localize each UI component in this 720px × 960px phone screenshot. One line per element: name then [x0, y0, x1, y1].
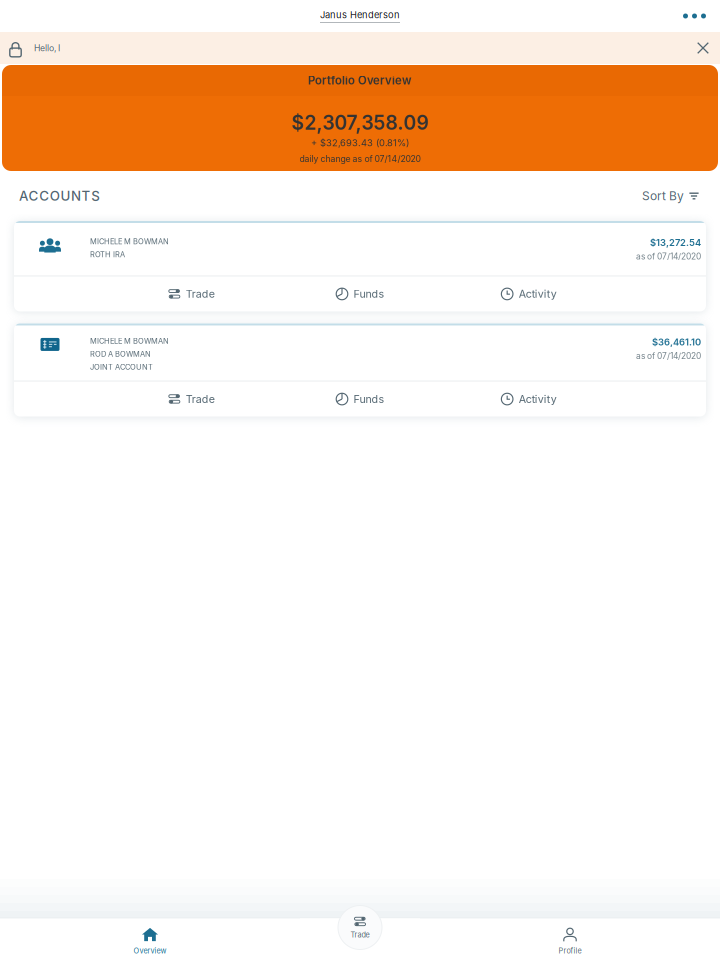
staticText: Hello, I [34, 43, 60, 53]
staticText: $2,307,358.09 [291, 111, 428, 134]
staticText: Profile [558, 946, 581, 955]
staticText: JOINT ACCOUNT [90, 362, 153, 371]
staticText: Activity [519, 393, 557, 405]
staticText: daily change as of 07/14/2020 [299, 154, 420, 164]
staticText: Trade [186, 287, 215, 300]
button[interactable]: Activity [444, 276, 613, 311]
button[interactable]: Profile [420, 918, 720, 958]
button[interactable]: Overview [0, 918, 300, 958]
staticText: ACCOUNTS [19, 188, 100, 204]
staticText: $36,461.10 [652, 336, 701, 348]
staticText: as of 07/14/2020 [636, 251, 701, 261]
button[interactable]: Sort By [642, 181, 699, 211]
button[interactable]: Activity [444, 382, 613, 417]
staticText: as of 07/14/2020 [636, 351, 701, 361]
staticText: Funds [353, 393, 384, 405]
staticText: Trade [186, 393, 215, 405]
button[interactable]: Dismiss [686, 32, 720, 64]
staticText: Portfolio Overview [308, 74, 412, 87]
staticText: MICHELE M BOWMAN [90, 336, 169, 345]
button[interactable]: Trade [107, 382, 276, 417]
staticText: Trade [350, 930, 369, 939]
staticText: Janus Henderson [320, 9, 400, 20]
staticText: Funds [353, 287, 384, 300]
button[interactable]: Trade [107, 276, 276, 311]
button[interactable]: Trade [338, 905, 382, 949]
staticText: ROTH IRA [90, 250, 125, 259]
staticText: MICHELE M BOWMAN [90, 237, 169, 246]
staticText: + $32,693.43 (0.81%) [311, 137, 409, 149]
staticText: Sort By [642, 189, 684, 203]
staticText: ROD A BOWMAN [90, 349, 151, 358]
staticText: $13,272.54 [650, 237, 701, 248]
button[interactable]: Funds [276, 276, 444, 311]
button[interactable]: More options [669, 0, 720, 32]
staticText: Overview [133, 946, 166, 955]
staticText: Activity [519, 287, 557, 300]
button[interactable]: Funds [276, 382, 444, 417]
